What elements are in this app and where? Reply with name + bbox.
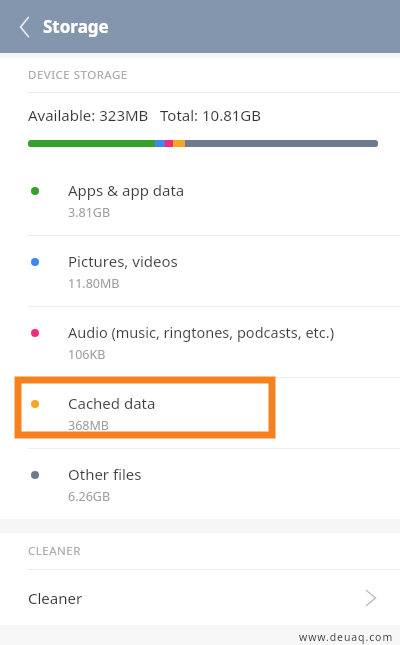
staticText: 6.26GB xyxy=(68,488,111,505)
staticText: Cleaner xyxy=(28,588,360,608)
staticText: Other files xyxy=(68,464,142,484)
staticText: Audio (music, ringtones, podcasts, etc.) xyxy=(68,322,335,342)
staticText: www.deuaq.com xyxy=(299,630,394,644)
staticText: 368MB xyxy=(68,417,109,434)
staticText: CLEANER xyxy=(28,543,81,559)
button[interactable]: Pictures, videos xyxy=(0,236,400,306)
button[interactable]: Apps & app data xyxy=(0,165,400,235)
staticText: 106KB xyxy=(68,346,106,363)
staticText: Cached data xyxy=(68,393,156,413)
staticText: Available: 323MB Total: 10.81GB xyxy=(28,105,262,125)
staticText: Storage xyxy=(43,15,109,38)
button[interactable]: Cached data xyxy=(0,378,400,448)
staticText: DEVICE STORAGE xyxy=(28,67,128,83)
staticText: Pictures, videos xyxy=(68,251,178,271)
button[interactable]: Other files xyxy=(0,449,400,519)
button[interactable]: Back xyxy=(8,10,42,44)
other: Open Cleaner xyxy=(360,587,382,609)
staticText: 3.81GB xyxy=(68,204,111,221)
staticText: 11.80MB xyxy=(68,275,120,292)
button[interactable]: Cleaner xyxy=(0,570,400,625)
staticText: Apps & app data xyxy=(68,180,185,200)
button[interactable]: Audio (music, ringtones, podcasts, etc.) xyxy=(0,307,400,377)
